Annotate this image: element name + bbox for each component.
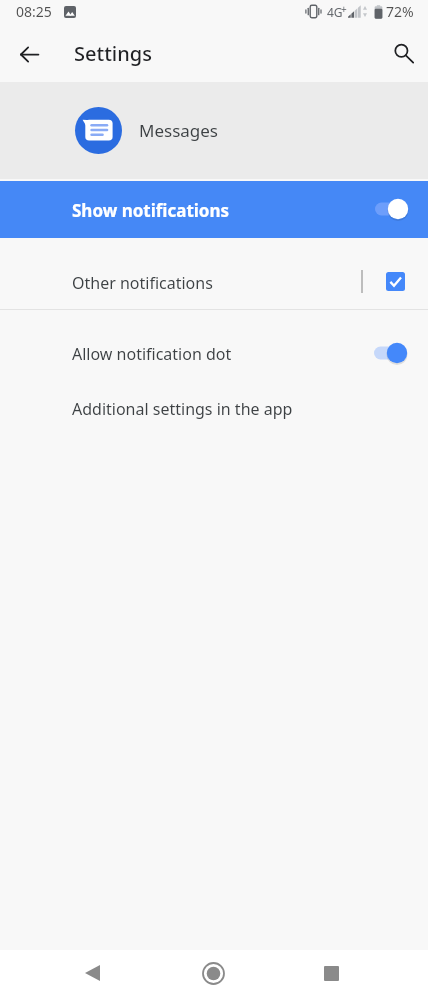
button[interactable]: Toggle	[375, 194, 411, 224]
staticText: Settings	[74, 40, 152, 67]
staticText: Show notifications	[72, 199, 230, 222]
button[interactable]: Toggle	[374, 338, 410, 368]
staticText: 72%	[386, 2, 414, 21]
button[interactable]: Back	[9, 34, 49, 74]
staticText: Additional settings in the app	[72, 398, 293, 420]
button[interactable]: Back	[68, 949, 116, 997]
button[interactable]: Allow notification dot	[0, 310, 428, 381]
other: Signal strength	[348, 5, 362, 18]
button[interactable]: Additional settings in the app	[0, 381, 428, 436]
button[interactable]: Messages	[0, 82, 428, 179]
staticText: Other notifications	[72, 272, 213, 294]
button[interactable]: Search	[382, 32, 424, 74]
button[interactable]: Other notifications checkbox	[376, 262, 414, 300]
staticText: 08:25	[16, 2, 52, 21]
button[interactable]: Other notifications	[0, 238, 428, 309]
other: Battery 72 percent	[374, 4, 383, 19]
other: Screenshot notification	[64, 6, 76, 18]
staticText: 4G	[327, 4, 343, 20]
button[interactable]: Recent apps	[307, 949, 355, 997]
staticText: Allow notification dot	[72, 343, 232, 365]
staticText: +	[341, 2, 347, 16]
staticText: Messages	[139, 119, 219, 142]
button[interactable]: Show notifications	[0, 181, 428, 238]
button[interactable]: Home	[189, 949, 237, 997]
other: Vibrate mode	[305, 5, 322, 18]
